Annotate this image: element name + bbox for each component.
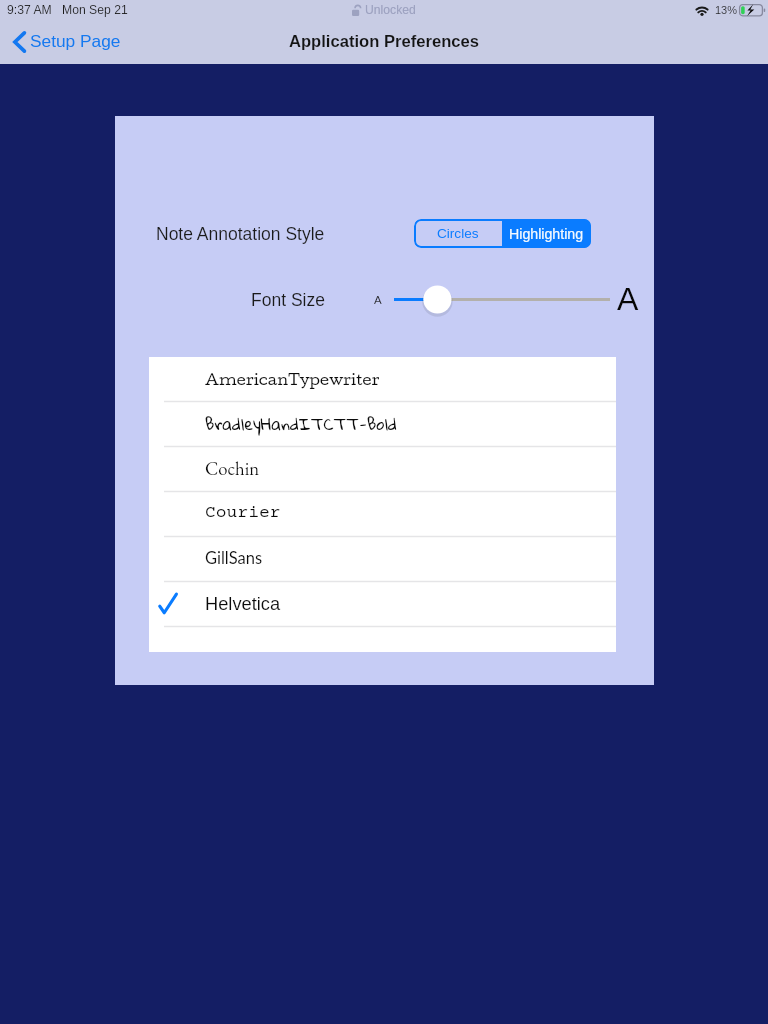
button[interactable]: Courier — [149, 492, 616, 536]
button[interactable]: Cochin — [149, 447, 616, 491]
staticText: Mon Sep 21 — [62, 3, 128, 17]
staticText: A — [617, 281, 639, 317]
staticText: Unlocked — [365, 3, 416, 17]
staticText: Font Size — [251, 290, 325, 310]
staticText: AmericanTypewriter — [205, 370, 380, 389]
staticText: Setup Page — [30, 31, 121, 50]
button[interactable]: Circles — [414, 219, 502, 248]
staticText: 13% — [715, 4, 738, 16]
staticText: A — [374, 294, 382, 307]
button[interactable]: AmericanTypewriter — [149, 357, 616, 401]
button[interactable]: Setup Page — [0, 22, 131, 64]
button[interactable]: BradleyHandITCTT-Bold — [149, 402, 616, 446]
button[interactable]: Highlighting — [502, 219, 591, 248]
staticText: Highlighting — [509, 226, 584, 242]
button[interactable]: GillSans — [149, 537, 616, 581]
staticText: Note Annotation Style — [156, 224, 325, 244]
staticText: 9:37 AM — [7, 3, 52, 17]
other: Wi-Fi — [695, 5, 709, 16]
staticText: Helvetica — [205, 593, 281, 613]
staticText: Circles — [437, 226, 479, 241]
other: Battery charging 13 percent — [739, 1, 764, 17]
staticText: Application Preferences — [289, 32, 479, 51]
button[interactable]: Helvetica — [149, 582, 616, 626]
staticText: Courier — [205, 503, 281, 523]
staticText: BradleyHandITCTT-Bold — [205, 408, 397, 440]
staticText: GillSans — [205, 548, 263, 568]
staticText: Cochin — [205, 456, 260, 480]
